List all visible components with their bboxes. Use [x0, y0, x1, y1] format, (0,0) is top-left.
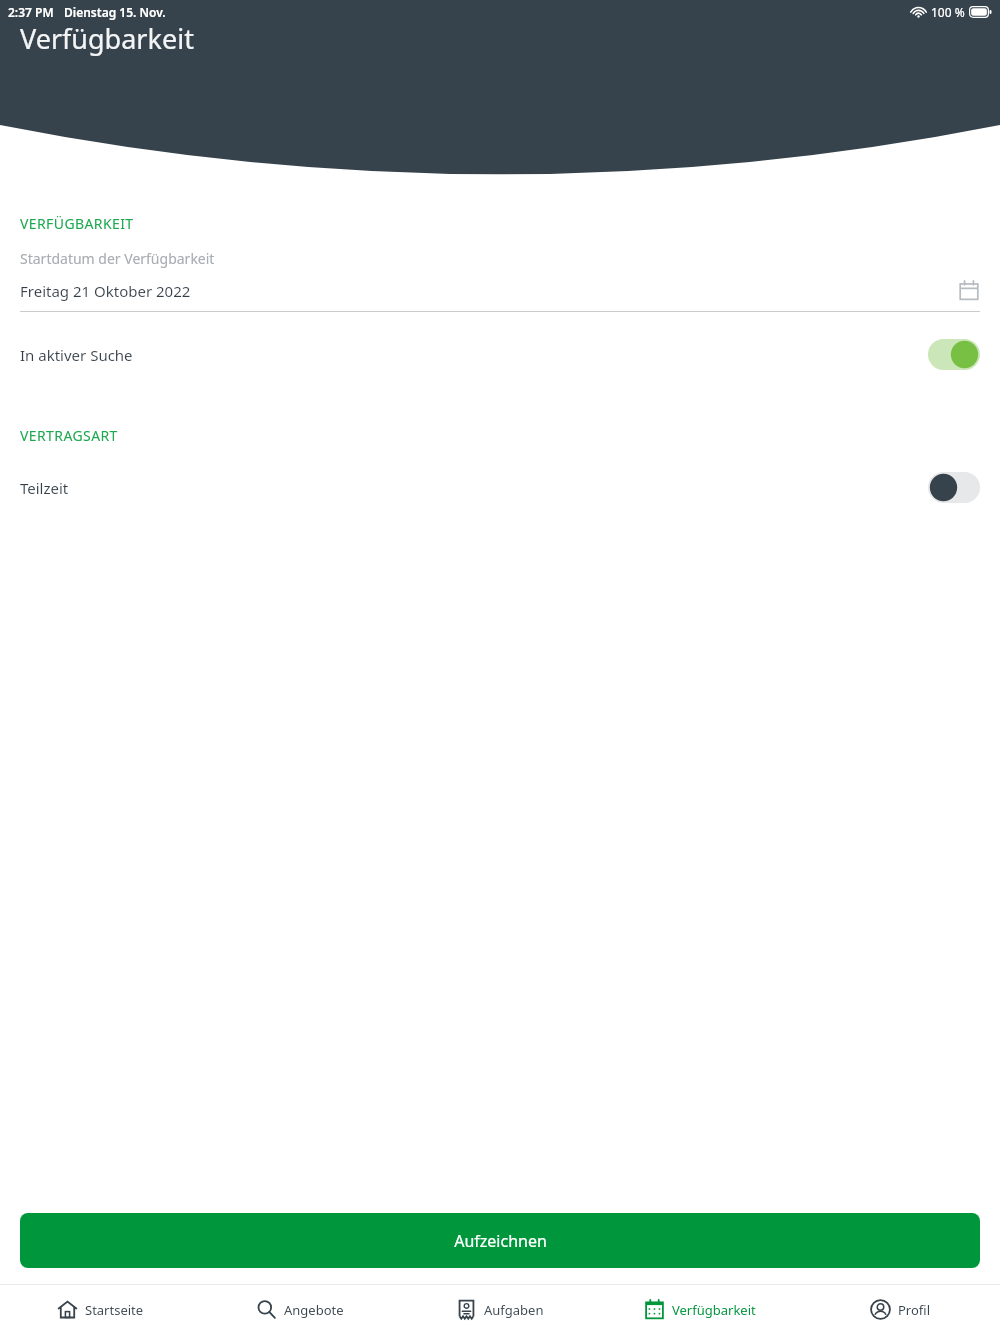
staticText: Dienstag 15. Nov. — [64, 4, 166, 20]
staticText: 100 % — [931, 4, 965, 20]
button[interactable]: In aktiver Suche — [0, 339, 1000, 370]
staticText: Teilzeit — [20, 478, 69, 498]
other: Datum auswählen — [958, 280, 980, 302]
staticText: Startdatum der Verfügbarkeit — [20, 249, 215, 268]
staticText: Freitag 21 Oktober 2022 — [20, 281, 191, 301]
staticText: VERTRAGSART — [20, 426, 118, 445]
button[interactable]: Teilzeit — [0, 472, 1000, 503]
button[interactable]: Freitag 21 Oktober 2022 — [0, 280, 1000, 302]
staticText: 2:37 PM — [8, 4, 54, 20]
staticText: Aufgaben — [484, 1301, 544, 1319]
button[interactable]: Verfügbarkeit — [600, 1285, 800, 1334]
staticText: VERFÜGBARKEIT — [20, 214, 134, 233]
button[interactable]: Aufzeichnen — [20, 1213, 980, 1268]
staticText: Profil — [898, 1301, 931, 1319]
staticText: In aktiver Suche — [20, 345, 133, 365]
staticText: Verfügbarkeit — [20, 20, 194, 57]
staticText: Angebote — [284, 1301, 344, 1319]
staticText: Verfügbarkeit — [672, 1301, 756, 1319]
button[interactable]: Angebote — [200, 1285, 400, 1334]
button[interactable]: Profil — [800, 1285, 1000, 1334]
staticText: Aufzeichnen — [454, 1230, 547, 1252]
staticText: Startseite — [85, 1301, 144, 1319]
button[interactable]: Aufgaben — [400, 1285, 600, 1334]
button[interactable]: Startseite — [0, 1285, 200, 1334]
